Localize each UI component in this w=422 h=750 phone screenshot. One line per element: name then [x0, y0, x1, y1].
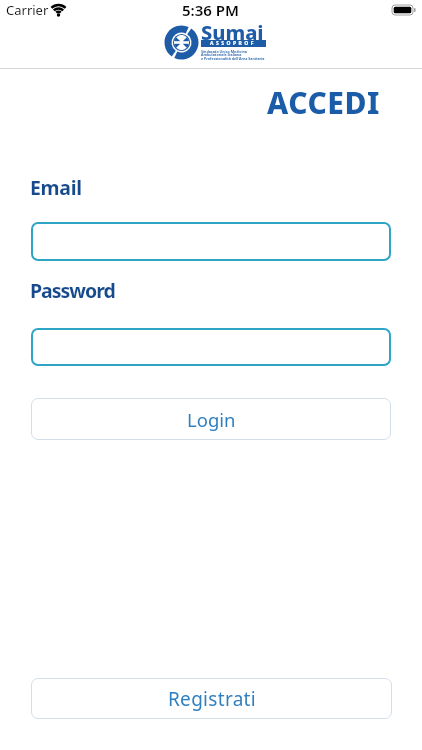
staticText: 5:36 PM	[182, 0, 239, 20]
staticText: Sumai	[201, 19, 264, 46]
staticText: Email	[30, 174, 82, 201]
staticText: Login	[187, 407, 236, 432]
staticText: ACCEDI	[267, 82, 380, 123]
staticText: Registrati	[168, 686, 256, 712]
staticText: Password	[30, 277, 115, 304]
button[interactable]	[31, 222, 391, 261]
staticText: Ambulatoriale Italiana	[201, 52, 242, 57]
staticText: Sindacato Unico Medicina	[201, 49, 248, 54]
staticText: e Professionalità dell'Area Sanitaria	[201, 56, 265, 61]
button[interactable]	[31, 328, 391, 366]
button[interactable]: Login	[31, 398, 391, 440]
button[interactable]: Registrati	[31, 678, 392, 719]
staticText: ASSOPROF	[210, 40, 257, 47]
staticText: Carrier	[6, 1, 49, 19]
